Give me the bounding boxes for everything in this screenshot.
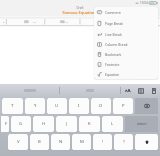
button[interactable]: Comment xyxy=(94,7,158,18)
button[interactable]: Column Break xyxy=(94,39,158,49)
button[interactable]: B xyxy=(30,134,49,150)
button[interactable]: Bookmark xyxy=(94,49,158,59)
button[interactable]: ! xyxy=(93,134,112,150)
staticText: Y xyxy=(34,103,37,109)
button[interactable]: Alignment xyxy=(134,84,147,97)
button[interactable]: O xyxy=(91,98,111,114)
staticText: Page Break xyxy=(105,21,123,26)
staticText: L xyxy=(111,121,114,127)
staticText: F xyxy=(5,121,8,127)
staticText: G xyxy=(19,121,23,127)
staticText: Footnote xyxy=(105,62,120,67)
button[interactable]: Page Break xyxy=(94,18,158,29)
button[interactable]: Y xyxy=(25,98,45,114)
button[interactable]: I xyxy=(69,98,89,114)
button[interactable]: K xyxy=(79,116,100,132)
button[interactable]: Line Break xyxy=(94,29,158,39)
staticText: Equation xyxy=(105,72,120,77)
staticText: Bookmark xyxy=(105,52,122,57)
button[interactable]: Shift xyxy=(135,134,158,150)
staticText: Column Break xyxy=(105,42,128,47)
staticText: 14 xyxy=(96,20,99,23)
button[interactable] xyxy=(61,85,119,96)
button[interactable]: Backspace xyxy=(135,98,158,114)
button[interactable]: Insert xyxy=(147,84,160,97)
staticText: I xyxy=(78,103,80,109)
staticText: B xyxy=(38,139,41,145)
staticText: O xyxy=(99,103,103,109)
button[interactable]: F xyxy=(1,116,9,132)
staticText: Draft xyxy=(76,6,84,10)
staticText: V xyxy=(17,139,20,145)
button[interactable]: return xyxy=(125,116,158,132)
button[interactable]: V xyxy=(8,134,28,150)
staticText: 10 xyxy=(33,20,36,23)
button[interactable]: L xyxy=(102,116,123,132)
button[interactable]: U xyxy=(47,98,67,114)
staticText: N xyxy=(59,139,63,145)
button[interactable]: Footnote xyxy=(94,59,158,69)
staticText: J xyxy=(66,121,68,127)
staticText: 10:04 xyxy=(140,1,148,5)
button[interactable]: H xyxy=(33,116,54,132)
button[interactable]: Famous Equations xyxy=(60,10,100,15)
staticText: M xyxy=(80,139,84,145)
button[interactable]: Text size xyxy=(121,84,134,97)
staticText: 12 xyxy=(65,20,68,23)
button[interactable]: M xyxy=(72,134,91,150)
staticText: 8 xyxy=(3,20,5,23)
staticText: K xyxy=(88,121,91,127)
button[interactable]: ? xyxy=(114,134,133,150)
staticText: ! xyxy=(102,139,104,145)
staticText: ? xyxy=(123,139,125,145)
staticText: T xyxy=(11,103,14,109)
staticText: Famous Equations xyxy=(62,10,98,15)
staticText: P xyxy=(122,103,125,109)
staticText: return xyxy=(137,122,147,126)
button[interactable]: Equation xyxy=(94,69,158,79)
staticText: H xyxy=(42,121,46,127)
button[interactable]: N xyxy=(51,134,70,150)
button[interactable]: T xyxy=(2,98,23,114)
button[interactable] xyxy=(1,85,58,96)
staticText: Comment xyxy=(105,10,121,15)
button[interactable]: G xyxy=(11,116,31,132)
button[interactable]: J xyxy=(56,116,77,132)
button[interactable]: P xyxy=(113,98,133,114)
staticText: Line Break xyxy=(105,32,122,37)
staticText: U xyxy=(55,103,59,109)
